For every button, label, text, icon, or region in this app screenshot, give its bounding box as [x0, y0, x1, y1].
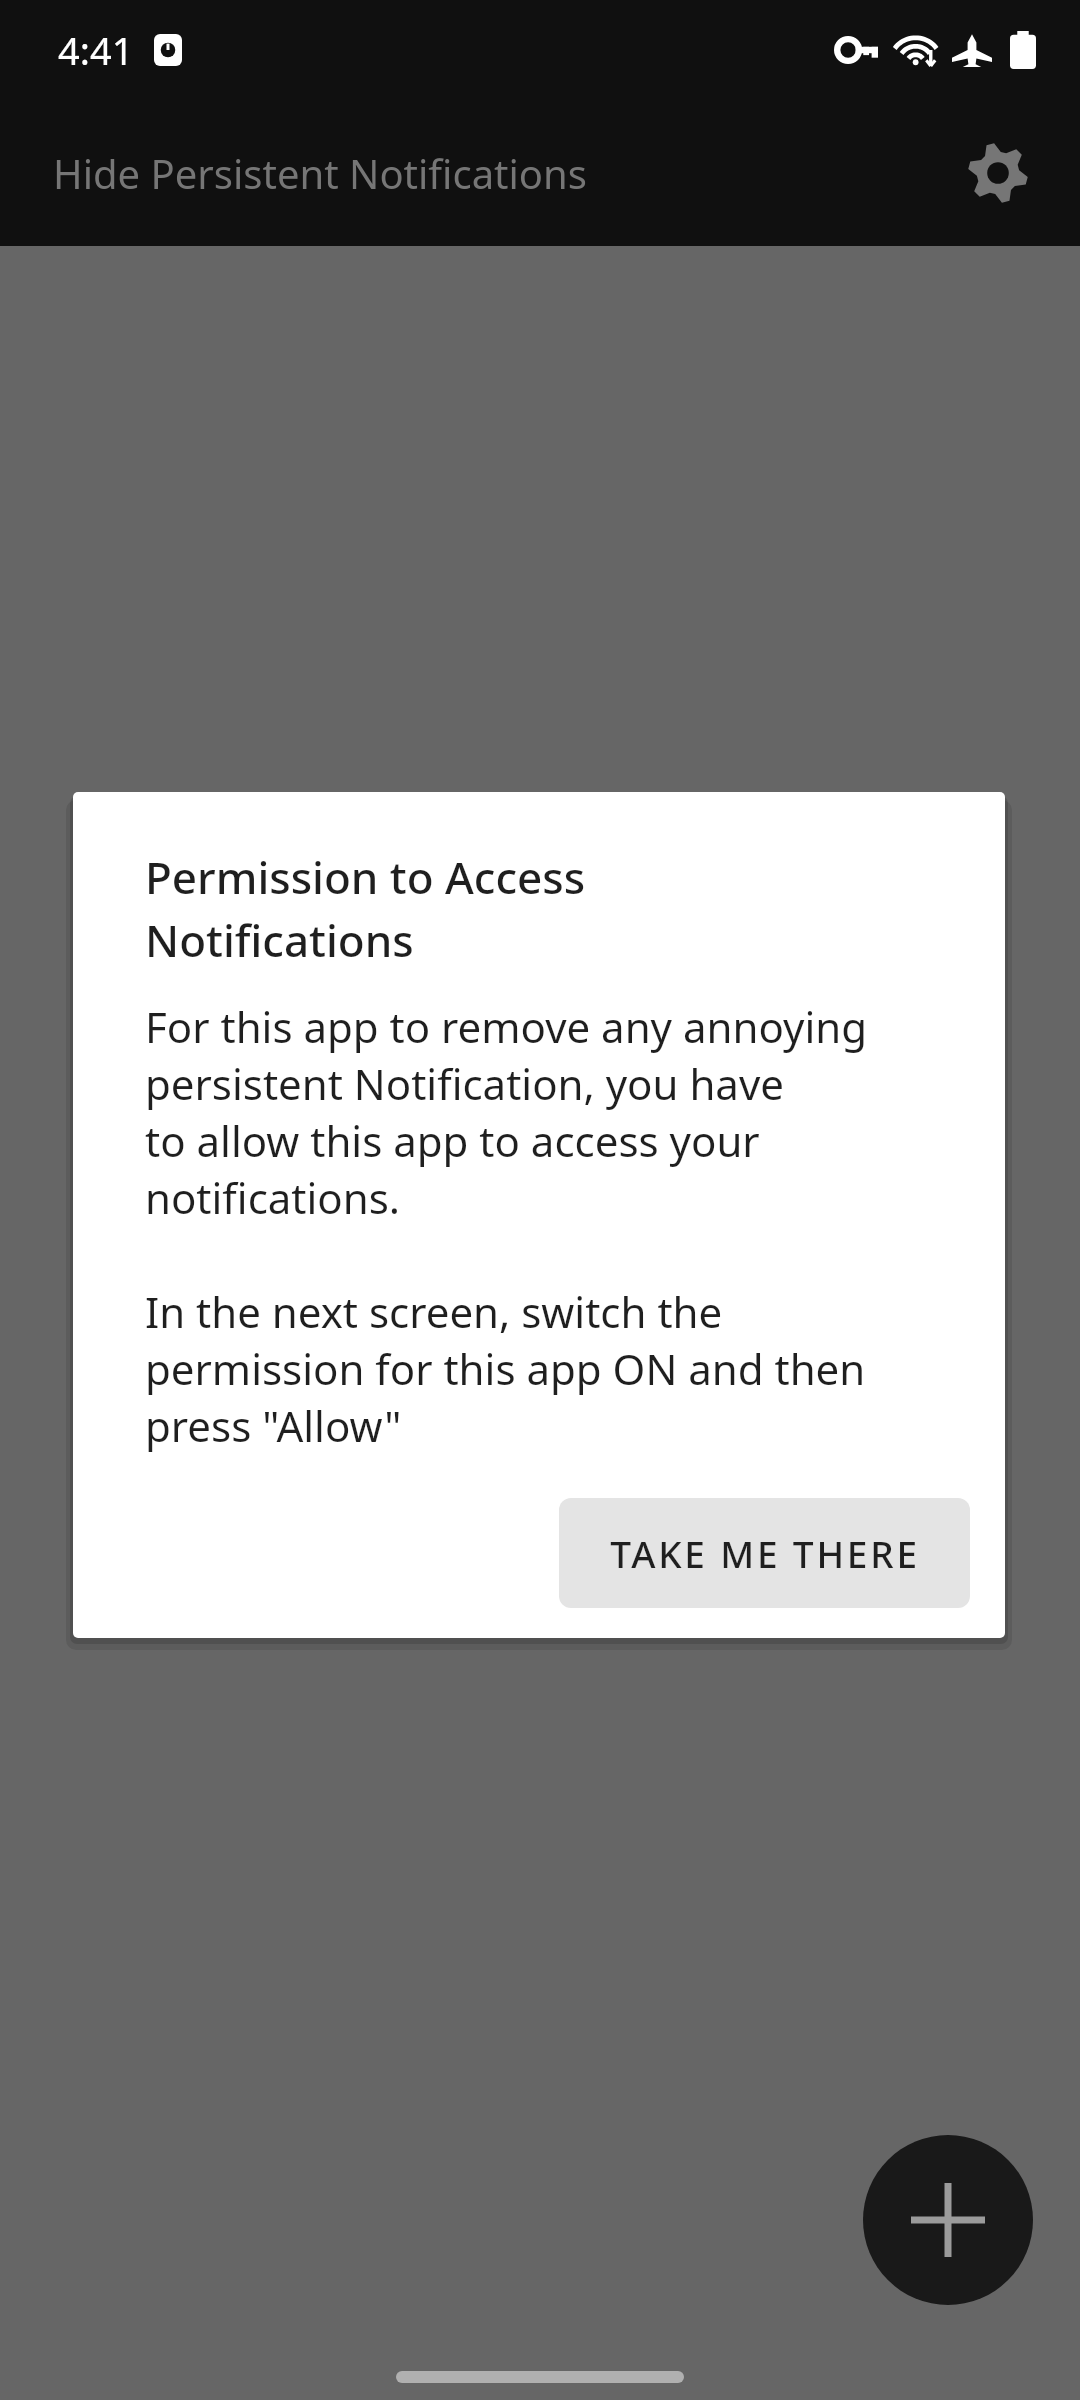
- staticText: Hide Persistent Notifications: [53, 146, 587, 200]
- staticText: 4:41: [58, 24, 134, 76]
- staticText: For this app to remove any annoying pers…: [145, 998, 868, 1454]
- button[interactable]: Add: [863, 2135, 1033, 2305]
- staticText: Permission to Access Notifications: [145, 847, 586, 970]
- button[interactable]: Settings: [950, 125, 1046, 221]
- button[interactable]: TAKE ME THERE: [559, 1498, 970, 1608]
- staticText: TAKE ME THERE: [610, 1528, 920, 1578]
